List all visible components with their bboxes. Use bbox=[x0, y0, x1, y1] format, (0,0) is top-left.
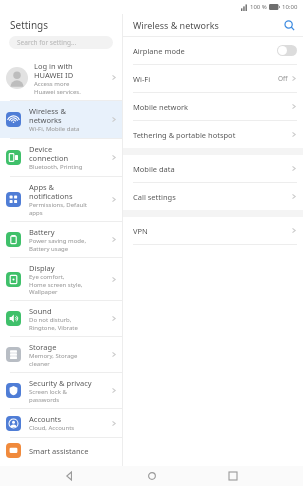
button[interactable]: Home bbox=[140, 466, 164, 486]
button[interactable]: Airplane mode toggle bbox=[277, 45, 297, 56]
staticText: Call settings bbox=[133, 192, 176, 202]
staticText: Log in with HUAWEI ID bbox=[34, 61, 74, 80]
staticText: Wireless & networks bbox=[29, 106, 66, 125]
staticText: Off bbox=[278, 74, 288, 83]
button[interactable]: Tethering & portable hotspot bbox=[123, 121, 303, 148]
staticText: VPN bbox=[133, 226, 148, 236]
button[interactable]: Call settings bbox=[123, 183, 303, 210]
staticText: Settings bbox=[10, 18, 49, 32]
staticText: Sound bbox=[29, 306, 52, 316]
staticText: Device connection bbox=[29, 144, 69, 163]
button[interactable]: Mobile network bbox=[123, 93, 303, 120]
staticText: Search for setting... bbox=[17, 38, 77, 47]
button[interactable]: Smart assistance bbox=[0, 438, 122, 463]
button[interactable]: Airplane mode bbox=[123, 37, 303, 64]
staticText: Airplane mode bbox=[133, 46, 185, 56]
staticText: Wi-Fi bbox=[133, 74, 151, 84]
staticText: Permissions, Default apps bbox=[29, 201, 87, 216]
staticText: Eye comfort, Home screen style, Wallpape… bbox=[29, 273, 83, 295]
staticText: Storage bbox=[29, 342, 57, 352]
staticText: Apps & notifications bbox=[29, 182, 73, 201]
button[interactable]: Mobile data bbox=[123, 155, 303, 182]
staticText: Smart assistance bbox=[29, 446, 89, 456]
button[interactable]: Wi-Fi bbox=[123, 65, 303, 92]
staticText: Wireless & networks bbox=[133, 19, 219, 31]
staticText: Screen lock & passwords bbox=[29, 388, 67, 403]
button[interactable]: Security & privacy bbox=[0, 373, 122, 408]
button[interactable]: Wireless & networks bbox=[0, 101, 122, 138]
staticText: Cloud, Accounts bbox=[29, 424, 75, 432]
staticText: Security & privacy bbox=[29, 378, 92, 388]
staticText: Do not disturb, Ringtone, Vibrate bbox=[29, 316, 78, 331]
button[interactable]: Display bbox=[0, 258, 122, 300]
staticText: Mobile data bbox=[133, 164, 175, 174]
staticText: 10:00 bbox=[282, 3, 298, 11]
button[interactable]: Sound bbox=[0, 301, 122, 336]
button[interactable]: Apps & notifications bbox=[0, 177, 122, 221]
staticText: Tethering & portable hotspot bbox=[133, 130, 236, 140]
button[interactable]: Recent apps bbox=[221, 466, 245, 486]
button[interactable]: VPN bbox=[123, 217, 303, 244]
staticText: Battery bbox=[29, 227, 55, 237]
button[interactable]: Log in with HUAWEI ID bbox=[0, 55, 122, 100]
staticText: Power saving mode, Battery usage bbox=[29, 237, 86, 252]
staticText: Display bbox=[29, 263, 55, 273]
staticText: Memory, Storage cleaner bbox=[29, 352, 78, 367]
staticText: Wi-Fi, Mobile data bbox=[29, 125, 80, 133]
staticText: Accounts bbox=[29, 414, 62, 424]
button[interactable]: Accounts bbox=[0, 409, 122, 437]
staticText: Mobile network bbox=[133, 102, 189, 112]
staticText: 100 % bbox=[250, 3, 267, 11]
button[interactable]: Storage bbox=[0, 337, 122, 372]
button[interactable]: Device connection bbox=[0, 139, 122, 176]
staticText: Access more Huawei services. bbox=[34, 80, 81, 95]
button[interactable]: Search bbox=[281, 17, 297, 33]
button[interactable]: Back bbox=[58, 466, 82, 486]
button[interactable]: Battery bbox=[0, 222, 122, 257]
staticText: Bluetooth, Printing bbox=[29, 163, 83, 171]
button[interactable]: Search for setting... bbox=[9, 36, 113, 49]
